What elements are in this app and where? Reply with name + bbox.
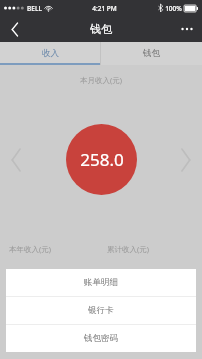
button[interactable]: 收入 [0, 42, 100, 65]
button[interactable]: 银行卡 [6, 297, 196, 324]
button[interactable]: More options [172, 16, 202, 42]
button[interactable]: 钱包密码 [6, 325, 196, 352]
button[interactable]: 258.0 [66, 124, 137, 195]
staticText: 258.0 [80, 148, 124, 171]
staticText: 累计收入(元) [107, 244, 149, 254]
staticText: BELL [27, 4, 42, 13]
button[interactable]: 钱包 [101, 42, 202, 65]
staticText: 钱包 [143, 48, 160, 59]
staticText: 收入 [42, 48, 59, 59]
button[interactable]: 账单明细 [6, 269, 196, 296]
staticText: 账单明细 [84, 277, 118, 288]
staticText: 本年收入(元) [9, 244, 51, 254]
staticText: 本月收入(元) [0, 75, 202, 85]
staticText: 4:21 PM [92, 4, 117, 13]
staticText: 100% [165, 4, 182, 13]
staticText: 钱包密码 [84, 333, 118, 344]
staticText: 钱包 [90, 22, 112, 36]
button[interactable]: Back [0, 16, 30, 42]
staticText: 银行卡 [88, 305, 114, 316]
